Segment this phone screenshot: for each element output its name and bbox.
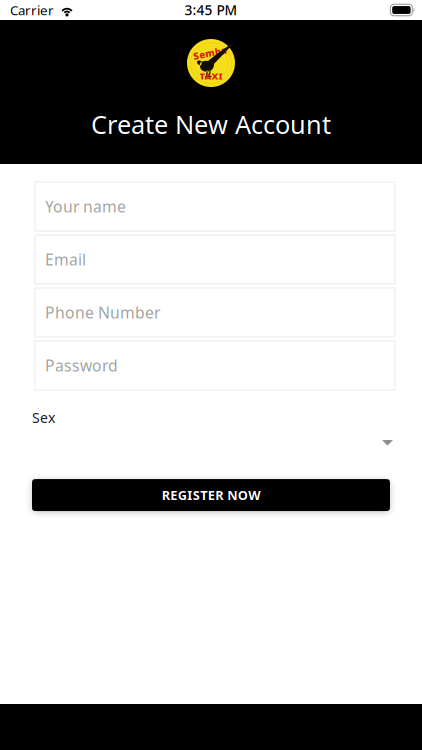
button[interactable]: Phone Number (35, 288, 395, 337)
staticText: Create New Account (91, 107, 331, 141)
staticText: Password (45, 355, 118, 376)
staticText: Semba (193, 46, 227, 60)
button[interactable]: Select sex (32, 434, 393, 452)
staticText: Email (45, 249, 86, 270)
staticText: REGISTER NOW (162, 486, 260, 504)
staticText: Phone Number (45, 302, 160, 323)
staticText: TAXI (199, 70, 222, 82)
button[interactable]: REGISTER NOW (32, 479, 390, 511)
button[interactable]: Email (35, 235, 395, 284)
staticText: 3:45 PM (184, 1, 237, 19)
button[interactable]: Your name (35, 182, 395, 231)
staticText: Sex (32, 408, 55, 427)
staticText: Your name (45, 196, 126, 217)
button[interactable]: Password (35, 341, 395, 390)
staticText: Carrier (10, 1, 54, 19)
